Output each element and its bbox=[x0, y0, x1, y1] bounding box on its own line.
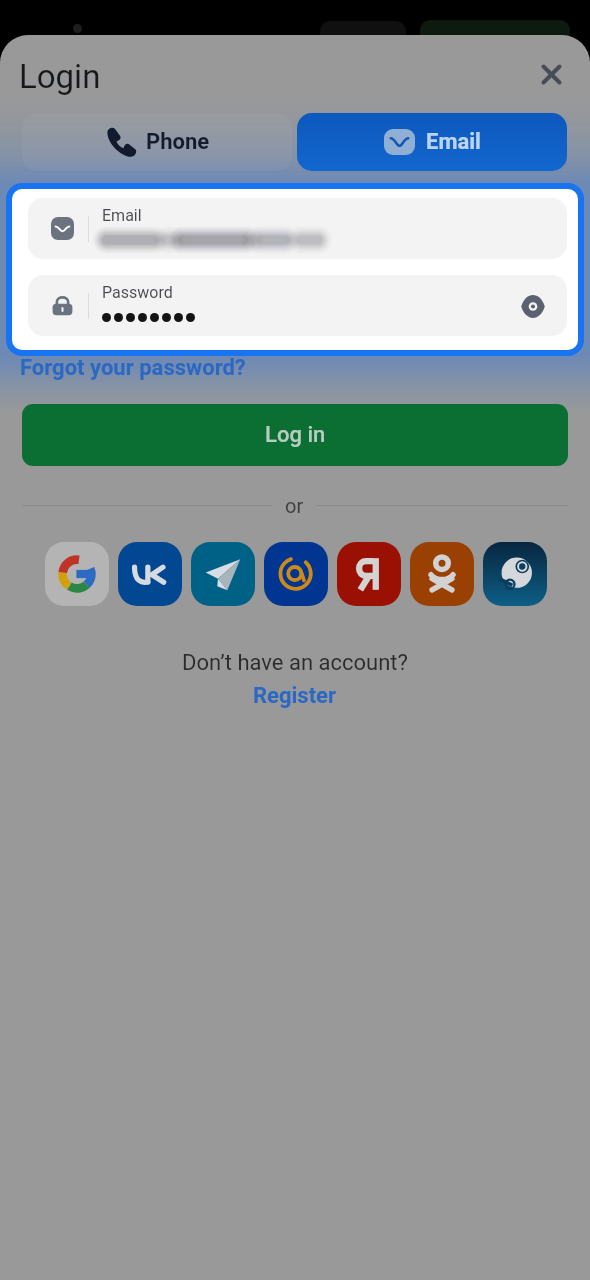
staticText: or bbox=[285, 494, 304, 517]
staticText: Login bbox=[19, 57, 101, 96]
staticText: Log in bbox=[265, 422, 326, 448]
button[interactable]: Email bbox=[28, 198, 567, 259]
button[interactable]: Register bbox=[253, 683, 337, 709]
staticText: Password bbox=[102, 283, 173, 302]
button[interactable]: Password bbox=[28, 275, 567, 336]
staticText: Email bbox=[102, 206, 142, 225]
button[interactable]: Forgot your password? bbox=[20, 355, 246, 381]
staticText: Phone bbox=[146, 129, 210, 155]
button[interactable]: Phone bbox=[22, 113, 292, 171]
button[interactable]: Email bbox=[297, 113, 567, 171]
button[interactable]: Log in bbox=[22, 404, 568, 466]
button[interactable]: Sign in with VK bbox=[118, 542, 182, 606]
button[interactable]: Sign in with Steam bbox=[483, 542, 547, 606]
button[interactable]: Sign in with Google bbox=[45, 542, 109, 606]
button[interactable]: Close bbox=[533, 56, 569, 92]
staticText: Don’t have an account? bbox=[182, 650, 408, 676]
button[interactable]: Sign in with Yandex bbox=[337, 542, 401, 606]
staticText: Email bbox=[426, 129, 481, 155]
button[interactable]: Sign in with Odnoklassniki bbox=[410, 542, 474, 606]
staticText: Forgot your password? bbox=[20, 355, 246, 381]
staticText: Register bbox=[253, 683, 337, 709]
button[interactable]: Sign in with Mail.ru bbox=[264, 542, 328, 606]
button[interactable]: Show password bbox=[513, 286, 553, 326]
button[interactable]: Sign in with Telegram bbox=[191, 542, 255, 606]
